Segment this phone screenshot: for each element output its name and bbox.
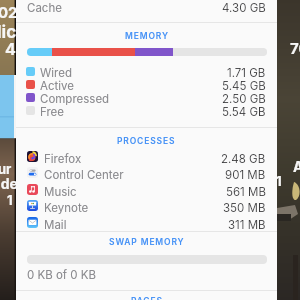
staticText: Compressed — [40, 92, 110, 105]
button[interactable]: Firefox — [16, 151, 277, 166]
button[interactable]: Compressed — [16, 92, 277, 105]
button[interactable]: Music — [16, 184, 277, 199]
button[interactable]: Active — [16, 79, 277, 92]
staticText: 901 MB — [225, 168, 266, 182]
staticText: ur — [0, 161, 12, 177]
button[interactable]: SWAP MEMORY — [16, 237, 277, 247]
button[interactable]: Cache — [16, 1, 277, 15]
button[interactable]: Mail — [16, 217, 277, 232]
staticText: Mail — [44, 218, 67, 232]
staticText: 023 — [0, 3, 28, 21]
staticText: Cache — [27, 1, 62, 15]
staticText: 561 MB — [226, 185, 266, 199]
button[interactable]: PAGES — [16, 296, 277, 300]
button[interactable]: Keynote — [16, 200, 277, 215]
staticText: PAGES — [131, 296, 163, 300]
staticText: A — [293, 158, 300, 175]
button[interactable]: Wired — [16, 66, 277, 79]
staticText: 350 MB — [223, 201, 266, 215]
staticText: PROCESSES — [117, 136, 176, 146]
staticText: Music — [44, 185, 77, 199]
staticText: MEMORY — [125, 31, 169, 41]
staticText: 1 — [276, 173, 282, 189]
staticText: 2.48 GB — [221, 152, 266, 166]
staticText: Keynote — [44, 201, 89, 215]
button[interactable]: MEMORY — [16, 31, 277, 41]
staticText: 311 MB — [228, 218, 266, 232]
staticText: lic — [0, 22, 17, 43]
staticText: Free — [40, 105, 64, 118]
staticText: 0 KB of 0 KB — [27, 268, 97, 282]
button[interactable]: Free — [16, 105, 277, 118]
staticText: 1.71 GB — [227, 66, 266, 79]
staticText: 4 — [5, 39, 16, 58]
staticText: 4.30 GB — [222, 1, 266, 15]
button[interactable]: PROCESSES — [16, 136, 277, 146]
button[interactable]: Control Center — [16, 167, 277, 182]
staticText: 5.45 GB — [222, 79, 266, 92]
staticText: SWAP MEMORY — [109, 237, 185, 247]
staticText: 5.54 GB — [222, 105, 266, 118]
staticText: 2.50 GB — [222, 92, 266, 105]
staticText: 1 — [7, 192, 13, 208]
staticText: Control Center — [44, 168, 124, 182]
staticText: Active — [40, 79, 74, 92]
staticText: Wired — [40, 66, 73, 79]
staticText: 70 — [290, 39, 300, 57]
staticText: Firefox — [44, 152, 82, 166]
staticText: lde — [0, 175, 18, 192]
